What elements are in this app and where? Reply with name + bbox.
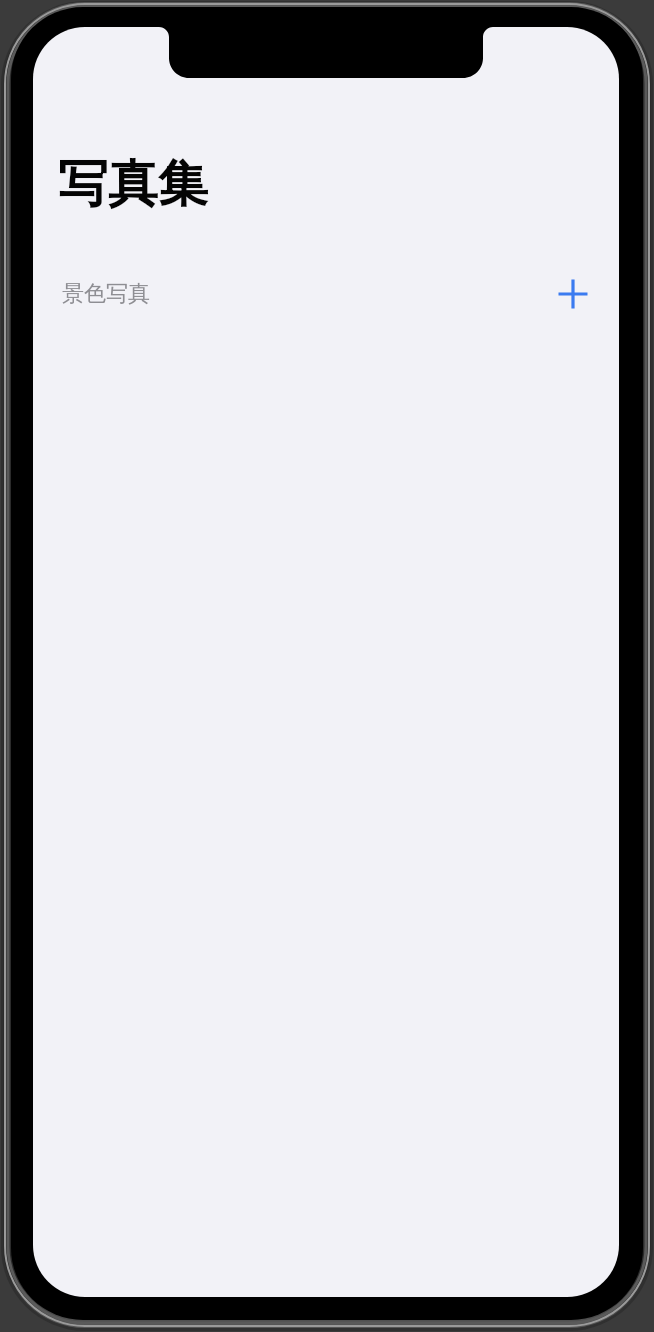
staticText: 景色写真 [62, 280, 150, 308]
staticText: 写真集 [58, 153, 208, 216]
button[interactable]: Add album [547, 268, 599, 320]
